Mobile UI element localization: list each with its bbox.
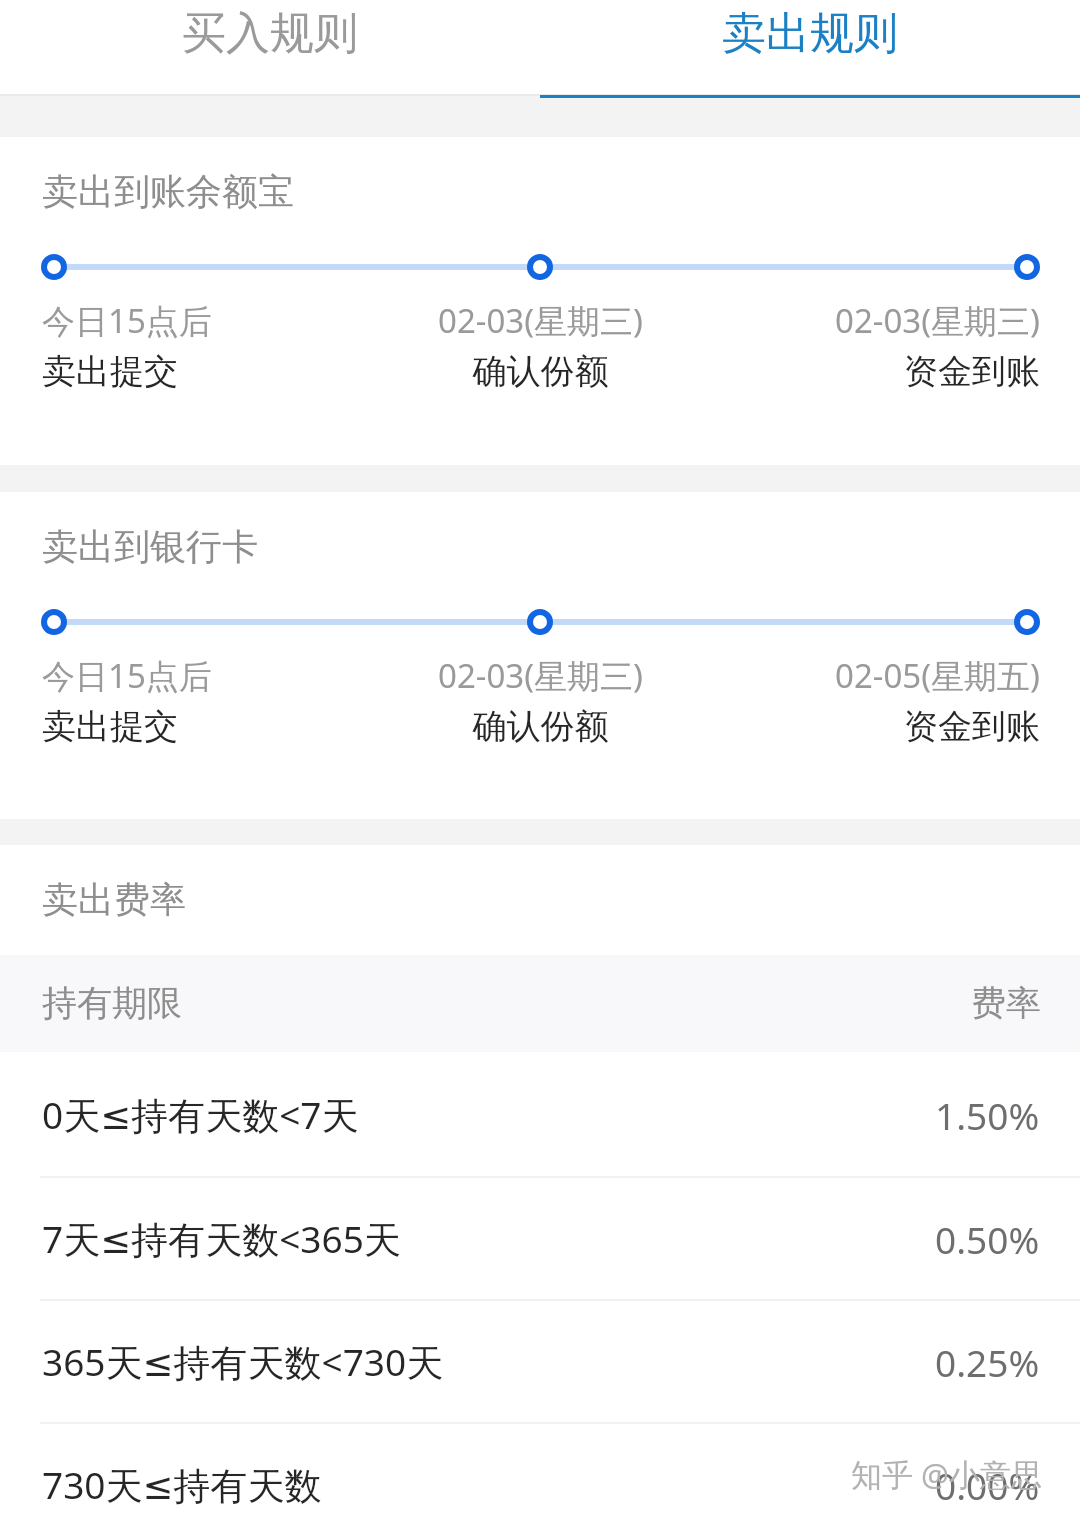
- staticText: 0.25%: [935, 1337, 1040, 1387]
- button[interactable]: 卖出规则: [540, 0, 1080, 96]
- staticText: 02-03(星期三): [707, 298, 1040, 343]
- button[interactable]: 买入规则: [0, 0, 540, 96]
- staticText: 0天≤持有天数<7天: [42, 1089, 359, 1140]
- staticText: 卖出提交: [42, 705, 374, 748]
- staticText: 卖出费率: [42, 877, 186, 922]
- button[interactable]: 730天≤持有天数: [0, 1423, 1080, 1521]
- staticText: 卖出到银行卡: [42, 524, 258, 569]
- staticText: 资金到账: [707, 705, 1040, 748]
- staticText: 0.50%: [935, 1214, 1040, 1264]
- staticText: 02-05(星期五): [707, 653, 1040, 698]
- staticText: 资金到账: [707, 350, 1040, 393]
- staticText: 02-03(星期三): [374, 653, 707, 698]
- staticText: 知乎 @小意思: [851, 1453, 1042, 1495]
- staticText: 02-03(星期三): [374, 298, 707, 343]
- button[interactable]: 7天≤持有天数<365天: [0, 1177, 1080, 1300]
- button[interactable]: 0天≤持有天数<7天: [0, 1052, 1080, 1177]
- staticText: 卖出规则: [722, 6, 898, 61]
- staticText: 0.00%: [935, 1460, 1040, 1510]
- staticText: 卖出提交: [42, 350, 374, 393]
- staticText: 买入规则: [182, 6, 358, 61]
- staticText: 卖出到账余额宝: [42, 169, 294, 214]
- staticText: 730天≤持有天数: [42, 1459, 322, 1510]
- staticText: 365天≤持有天数<730天: [42, 1336, 444, 1387]
- staticText: 7天≤持有天数<365天: [42, 1213, 401, 1264]
- staticText: 今日15点后: [42, 653, 374, 698]
- button[interactable]: 365天≤持有天数<730天: [0, 1300, 1080, 1423]
- staticText: 1.50%: [935, 1090, 1040, 1140]
- staticText: 费率: [971, 981, 1041, 1025]
- staticText: 今日15点后: [42, 298, 374, 343]
- staticText: 确认份额: [374, 350, 707, 393]
- staticText: 持有期限: [42, 981, 182, 1025]
- staticText: 确认份额: [374, 705, 707, 748]
